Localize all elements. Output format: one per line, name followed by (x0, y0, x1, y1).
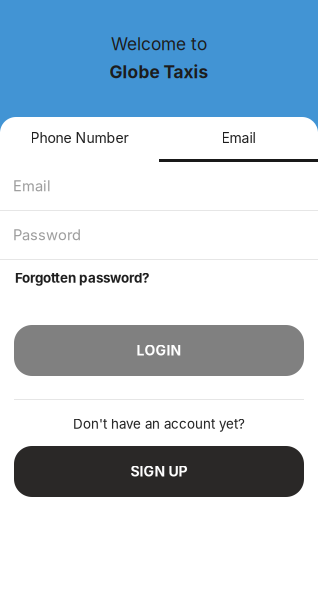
button[interactable]: Email (159, 117, 318, 162)
staticText: Welcome to (111, 33, 207, 54)
button[interactable]: LOGIN (14, 325, 304, 376)
button[interactable]: Password (0, 211, 318, 260)
staticText: Globe Taxis (109, 61, 208, 82)
staticText: Password (13, 226, 81, 244)
staticText: Phone Number (30, 129, 128, 146)
staticText: SIGN UP (130, 463, 187, 480)
button[interactable]: Phone Number (0, 117, 159, 162)
button[interactable]: Email (0, 162, 318, 211)
staticText: LOGIN (136, 342, 181, 359)
staticText: Forgotten password? (15, 270, 149, 286)
button[interactable]: SIGN UP (14, 446, 304, 497)
staticText: Don't have an account yet? (73, 416, 245, 432)
button[interactable]: Forgotten password? (0, 260, 318, 296)
staticText: Email (13, 177, 51, 195)
staticText: Email (221, 129, 255, 146)
